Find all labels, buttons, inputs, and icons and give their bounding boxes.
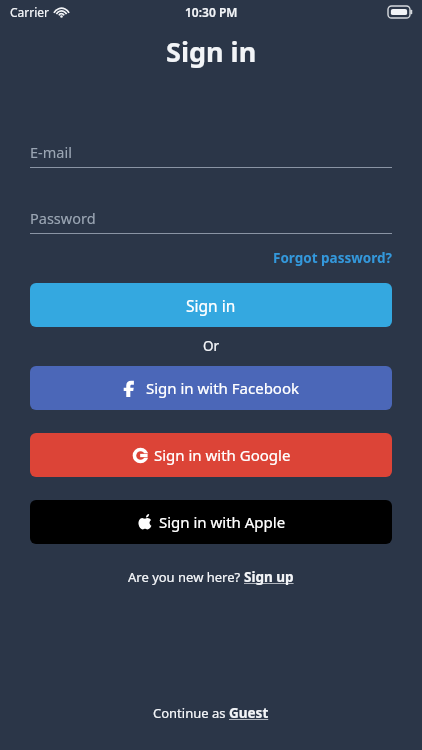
button[interactable]: Sign in	[30, 283, 392, 327]
staticText: E-mail	[30, 142, 72, 162]
button[interactable]: Sign in with Facebook	[30, 366, 392, 410]
staticText: Sign up	[244, 568, 294, 586]
staticText: Sign in	[186, 295, 236, 316]
staticText: 10:30 PM	[185, 4, 238, 20]
staticText: Continue as	[153, 704, 229, 722]
staticText: Guest	[229, 704, 269, 722]
button[interactable]: Password	[30, 208, 392, 234]
button[interactable]: E-mail	[30, 142, 392, 168]
staticText: Sign in with Facebook	[146, 378, 300, 398]
button[interactable]: Sign in with Apple	[30, 500, 392, 544]
staticText: Sign in with Google	[154, 445, 291, 465]
staticText: Forgot password?	[273, 249, 392, 267]
staticText: Are you new here?	[128, 568, 244, 586]
staticText: Sign in	[166, 33, 257, 70]
staticText: Or	[203, 337, 220, 355]
button[interactable]: Are you new here?	[30, 568, 392, 586]
staticText: Carrier	[10, 4, 50, 20]
button[interactable]: Forgot password?	[273, 249, 392, 267]
staticText: Password	[30, 208, 96, 228]
staticText: Sign in with Apple	[159, 512, 286, 532]
button[interactable]: Sign in with Google	[30, 433, 392, 477]
button[interactable]: Continue as	[0, 704, 422, 750]
